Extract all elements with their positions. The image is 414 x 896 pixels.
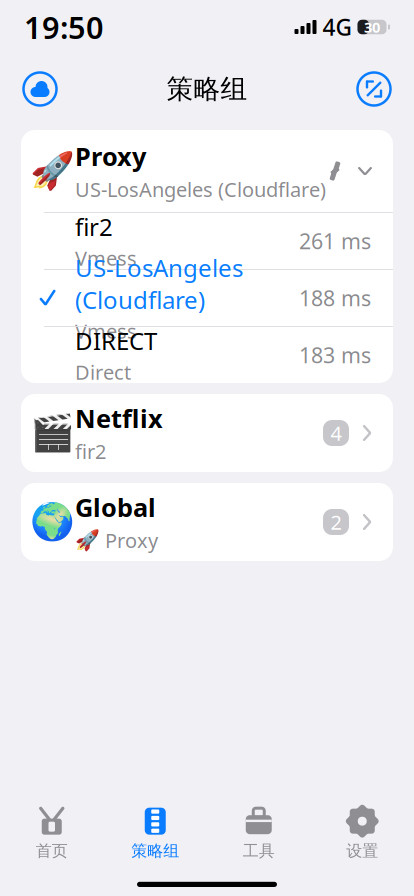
staticText: Netflix <box>75 401 163 435</box>
button[interactable]: fir2 <box>21 213 393 269</box>
button[interactable]: 工具 <box>207 799 310 865</box>
staticText: Global <box>75 490 156 524</box>
staticText: 261 ms <box>299 227 371 255</box>
button[interactable]: 🎬 <box>21 394 393 472</box>
staticText: Vmess <box>75 245 137 271</box>
staticText: 🌍 <box>29 501 74 542</box>
staticText: 策略组 <box>131 841 179 861</box>
staticText: fir2 <box>75 211 113 243</box>
staticText: 🎬 <box>29 412 74 453</box>
staticText: 设置 <box>346 841 378 861</box>
staticText: US-LosAngeles (Cloudflare) <box>75 176 326 203</box>
staticText: 首页 <box>36 841 68 861</box>
staticText: 188 ms <box>299 284 371 312</box>
staticText: 19:50 <box>24 7 104 47</box>
button[interactable]: 设置 <box>310 799 414 865</box>
staticText: 183 ms <box>299 341 371 369</box>
staticText: 🚀 <box>29 150 74 191</box>
staticText: 4G <box>322 12 351 42</box>
staticText: DIRECT <box>75 325 157 357</box>
staticText: Vmess <box>75 318 137 344</box>
button[interactable]: US-LosAngeles (Cloudflare) <box>21 270 393 326</box>
staticText: 2 <box>330 509 341 535</box>
staticText: 工具 <box>243 841 275 861</box>
staticText: US-LosAngeles (Cloudflare) <box>75 252 243 315</box>
button[interactable]: 首页 <box>0 799 103 865</box>
button[interactable]: 🌍 <box>21 483 393 561</box>
staticText: fir2 <box>75 438 106 465</box>
button[interactable]: 策略组 <box>103 799 207 865</box>
button[interactable]: 🚀 <box>21 130 393 212</box>
staticText: 策略组 <box>166 73 247 105</box>
staticText: Direct <box>75 359 131 385</box>
button[interactable]: Cloud <box>20 69 60 109</box>
staticText: Proxy <box>105 527 158 554</box>
staticText: 🚀 <box>75 529 100 552</box>
staticText: Proxy <box>75 139 146 173</box>
button[interactable]: DIRECT <box>21 327 393 383</box>
staticText: 30 <box>364 17 380 37</box>
button[interactable]: Expand <box>354 69 394 109</box>
staticText: 4 <box>330 420 341 446</box>
